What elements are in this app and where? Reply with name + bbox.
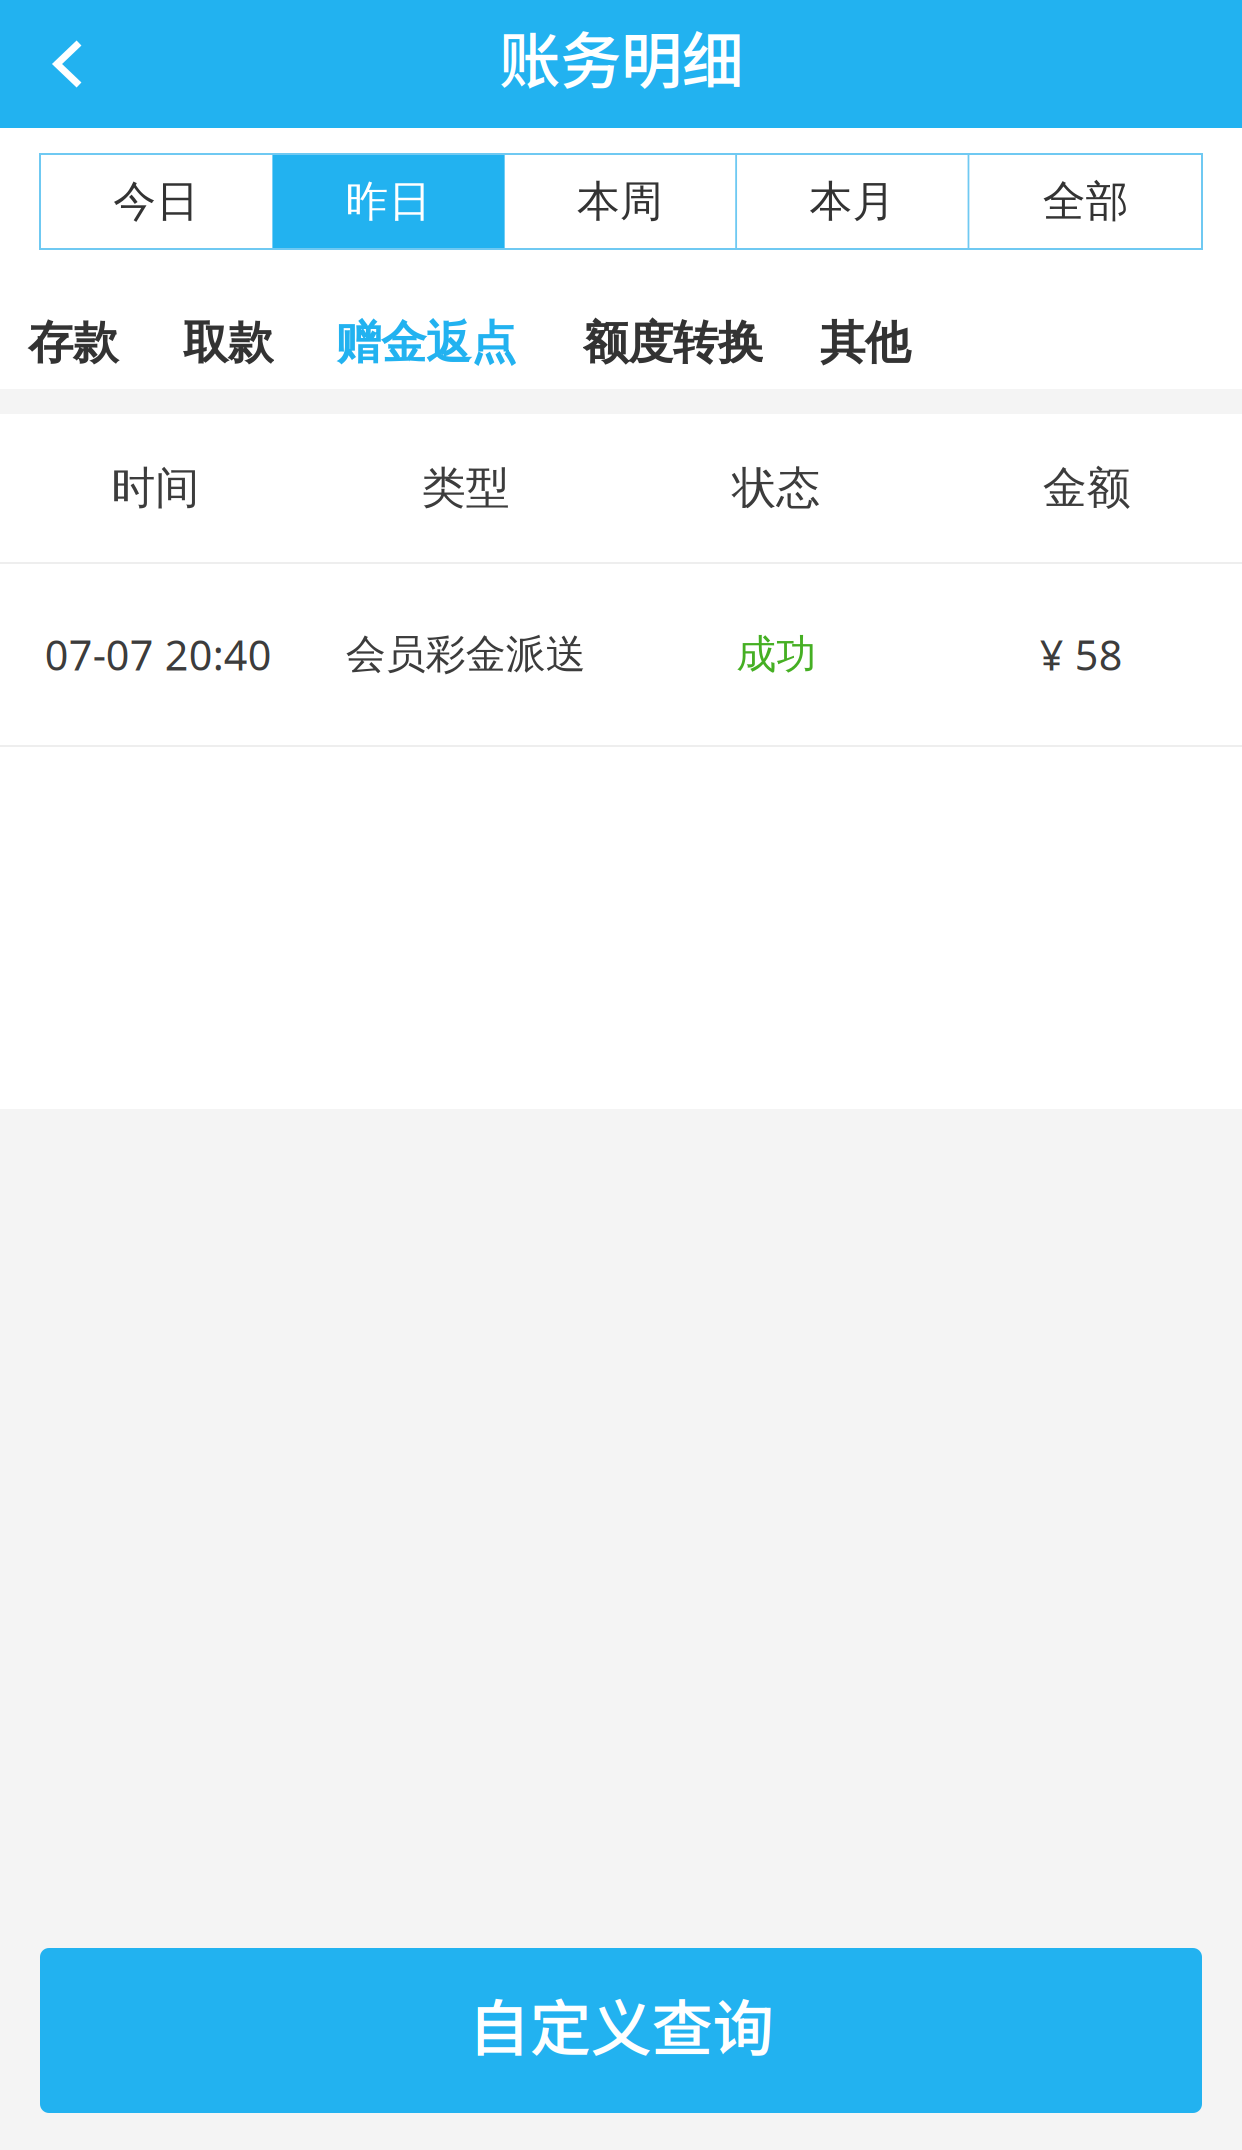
button[interactable]: 昨日 xyxy=(272,154,505,249)
button[interactable]: Back xyxy=(0,21,109,107)
button[interactable]: 自定义查询 xyxy=(40,1948,1202,2113)
staticText: 状态 xyxy=(732,461,820,515)
staticText: 存款 xyxy=(28,315,118,371)
staticText: 账务明细 xyxy=(499,12,743,101)
staticText: 成功 xyxy=(736,630,816,679)
staticText: 自定义查询 xyxy=(468,1980,773,2068)
button[interactable]: 存款 xyxy=(28,308,118,378)
staticText: 赠金返点 xyxy=(336,315,516,371)
staticText: 本月 xyxy=(809,175,895,228)
staticText: 昨日 xyxy=(346,175,432,228)
button[interactable]: 取款 xyxy=(183,308,273,378)
button[interactable]: 今日 xyxy=(40,154,272,249)
staticText: 取款 xyxy=(183,315,273,371)
button[interactable]: 全部 xyxy=(970,154,1202,249)
staticText: 类型 xyxy=(422,461,510,515)
staticText: 金额 xyxy=(1043,461,1131,515)
button[interactable]: 额度转换 xyxy=(583,308,763,378)
staticText: 07-07 20:40 xyxy=(45,627,272,682)
staticText: ¥ 58 xyxy=(1040,627,1123,682)
staticText: 其他 xyxy=(820,315,910,371)
staticText: 时间 xyxy=(111,461,199,515)
button[interactable]: 其他 xyxy=(820,308,910,378)
staticText: 会员彩金派送 xyxy=(346,630,586,679)
staticText: 额度转换 xyxy=(583,315,763,371)
staticText: 本周 xyxy=(577,175,663,228)
staticText: 今日 xyxy=(113,175,199,228)
button[interactable]: 赠金返点 xyxy=(336,308,516,378)
button[interactable]: 本周 xyxy=(505,154,737,249)
button[interactable]: 本月 xyxy=(737,154,970,249)
staticText: 全部 xyxy=(1043,175,1129,228)
